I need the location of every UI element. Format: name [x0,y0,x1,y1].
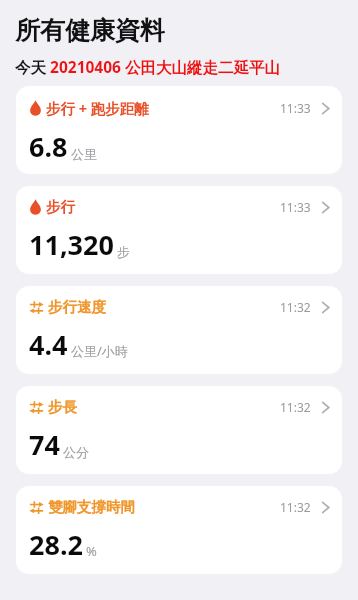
staticText: 步行 + 跑步距離 [46,98,149,118]
staticText: 步行速度 [48,298,106,316]
staticText: 11:33 [280,100,311,116]
staticText: 4.4 [29,326,68,363]
button[interactable]: 步行 + 跑步距離 [16,86,342,174]
staticText: % [86,542,97,560]
staticText: 公里 [71,146,97,162]
staticText: 公分 [63,444,89,460]
staticText: 雙腳支撐時間 [48,498,135,516]
staticText: 步 [117,244,130,260]
staticText: 步行 [46,198,75,216]
staticText: 步長 [48,398,77,416]
staticText: 11:32 [280,499,311,515]
button[interactable]: 雙腳支撐時間 [16,486,342,574]
staticText: 28.2 [29,526,83,563]
staticText: 公里/小時 [71,342,128,360]
staticText: 11:33 [280,199,311,215]
staticText: 今天 20210406 公田大山縱走二延平山 [15,56,280,77]
staticText: 11:32 [280,299,311,315]
staticText: 11:32 [280,399,311,415]
button[interactable]: 步長 [16,386,342,474]
staticText: 11,320 [29,226,114,263]
staticText: 6.8 [29,128,68,165]
staticText: 74 [29,426,60,463]
button[interactable]: 步行 [16,186,342,274]
button[interactable]: 步行速度 [16,286,342,374]
staticText: 所有健康資料 [15,15,165,46]
